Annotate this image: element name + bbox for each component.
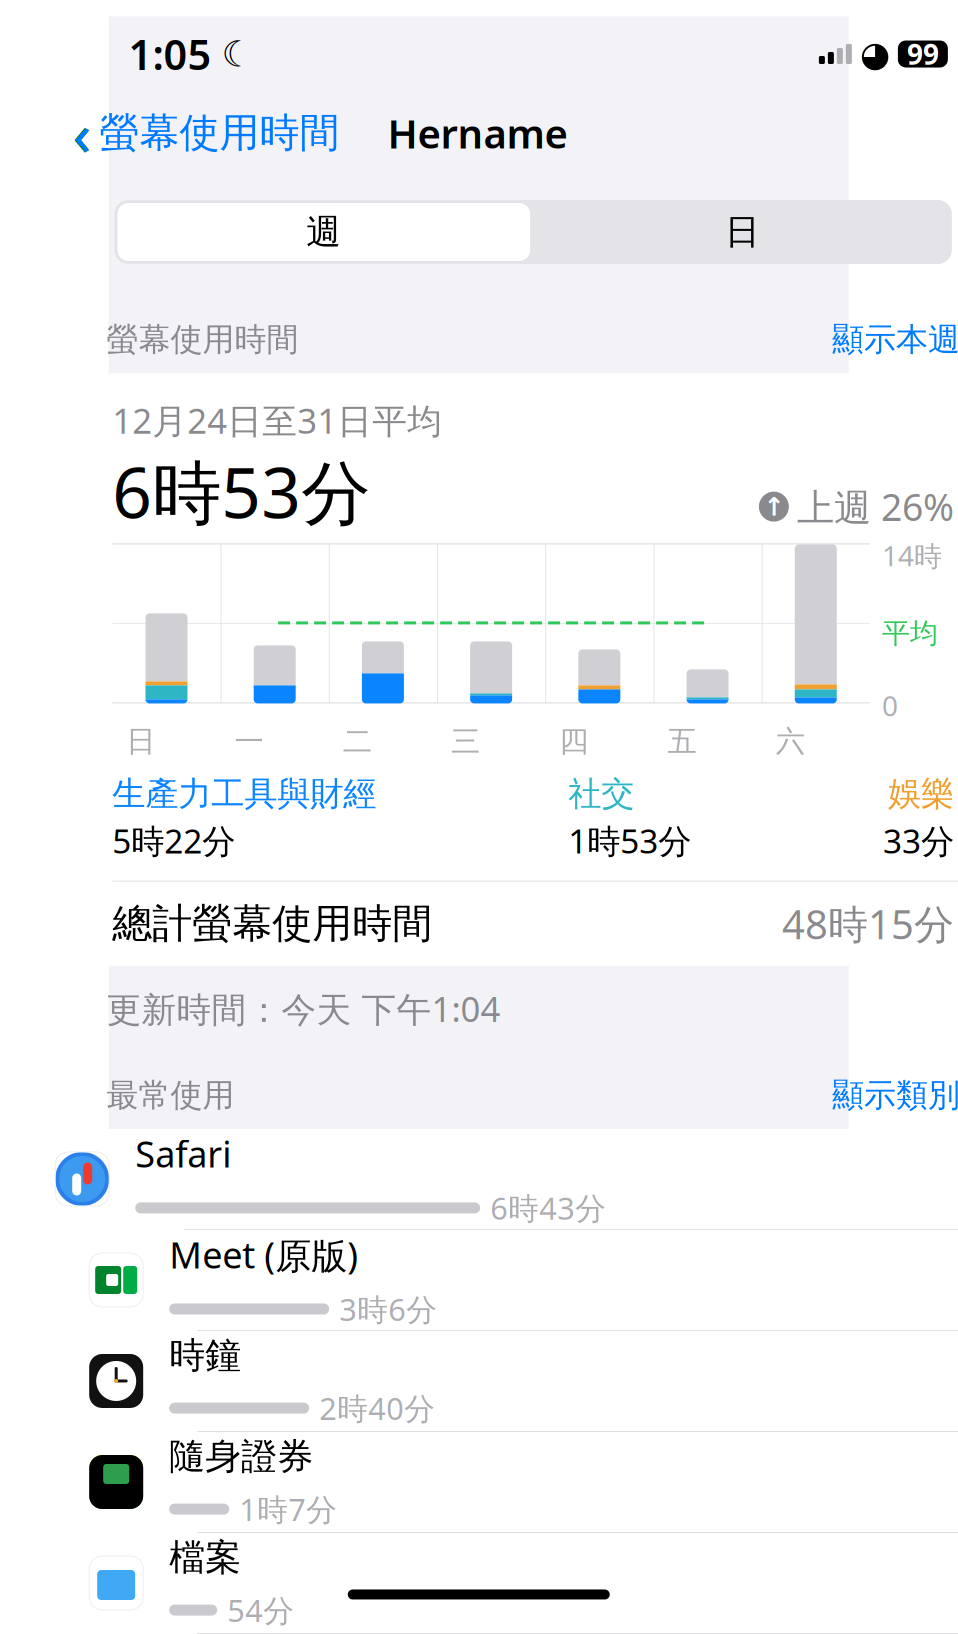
staticText: 六	[776, 723, 805, 759]
staticText: 3時6分	[339, 1289, 437, 1329]
staticText: 平均	[882, 616, 938, 651]
staticText: Safari	[135, 1130, 231, 1177]
staticText: 顯示本週	[832, 320, 958, 359]
staticText: 0	[882, 687, 898, 724]
button[interactable]: 週	[114, 200, 533, 264]
button[interactable]: 隨身證券	[57, 1432, 958, 1533]
staticText: 1:05	[128, 27, 211, 81]
staticText: 四	[559, 723, 588, 759]
staticText: 54分	[227, 1590, 294, 1630]
staticText: 時鐘	[169, 1333, 241, 1378]
button[interactable]: Meet (原版)	[57, 1230, 958, 1331]
button[interactable]: Safari	[30, 1129, 958, 1230]
staticText: 更新時間：今天 下午1:04	[106, 986, 500, 1032]
staticText: ‹	[72, 94, 91, 172]
staticText: 二	[343, 723, 372, 759]
staticText: 螢幕使用時間	[106, 320, 298, 359]
staticText: 48時15分	[782, 897, 954, 950]
staticText: 一	[235, 723, 264, 759]
staticText: 週	[306, 211, 341, 253]
staticText: 6時43分	[490, 1187, 606, 1228]
staticText: 日	[126, 723, 155, 759]
staticText: 6時53分	[112, 445, 370, 537]
staticText: ↑	[763, 492, 784, 521]
staticText: 檔案	[169, 1535, 241, 1580]
staticText: 顯示類別	[832, 1076, 958, 1115]
button[interactable]: 檔案	[57, 1533, 958, 1634]
staticText: ☾	[221, 34, 253, 74]
staticText: 99	[907, 35, 939, 73]
staticText: 33分	[883, 818, 954, 863]
staticText: Hername	[387, 106, 567, 159]
staticText: 生產力工具與財經	[112, 773, 376, 814]
staticText: 1時53分	[568, 818, 691, 863]
staticText: 社交	[568, 773, 634, 814]
button[interactable]: 時鐘	[57, 1331, 958, 1432]
button[interactable]: ‹	[54, 94, 339, 172]
staticText: 最常使用	[106, 1076, 234, 1115]
staticText: 娛樂	[888, 773, 954, 814]
button[interactable]: 顯示本週	[832, 320, 958, 359]
staticText: 上週 26%	[797, 482, 954, 531]
staticText: 2時40分	[319, 1388, 435, 1428]
staticText: 1時7分	[239, 1489, 337, 1529]
staticText: Meet (原版)	[169, 1231, 358, 1279]
staticText: 5時22分	[112, 818, 235, 863]
button[interactable]: 顯示類別	[832, 1076, 958, 1115]
staticText: 日	[725, 211, 760, 253]
button[interactable]: 日	[533, 200, 952, 264]
staticText: 五	[667, 723, 696, 759]
staticText: 螢幕使用時間	[99, 108, 339, 157]
staticText: 三	[451, 723, 480, 759]
staticText: 14時	[882, 537, 942, 574]
staticText: 12月24日至31日平均	[112, 397, 442, 443]
staticText: 總計螢幕使用時間	[112, 899, 432, 948]
staticText: 隨身證券	[169, 1434, 313, 1479]
